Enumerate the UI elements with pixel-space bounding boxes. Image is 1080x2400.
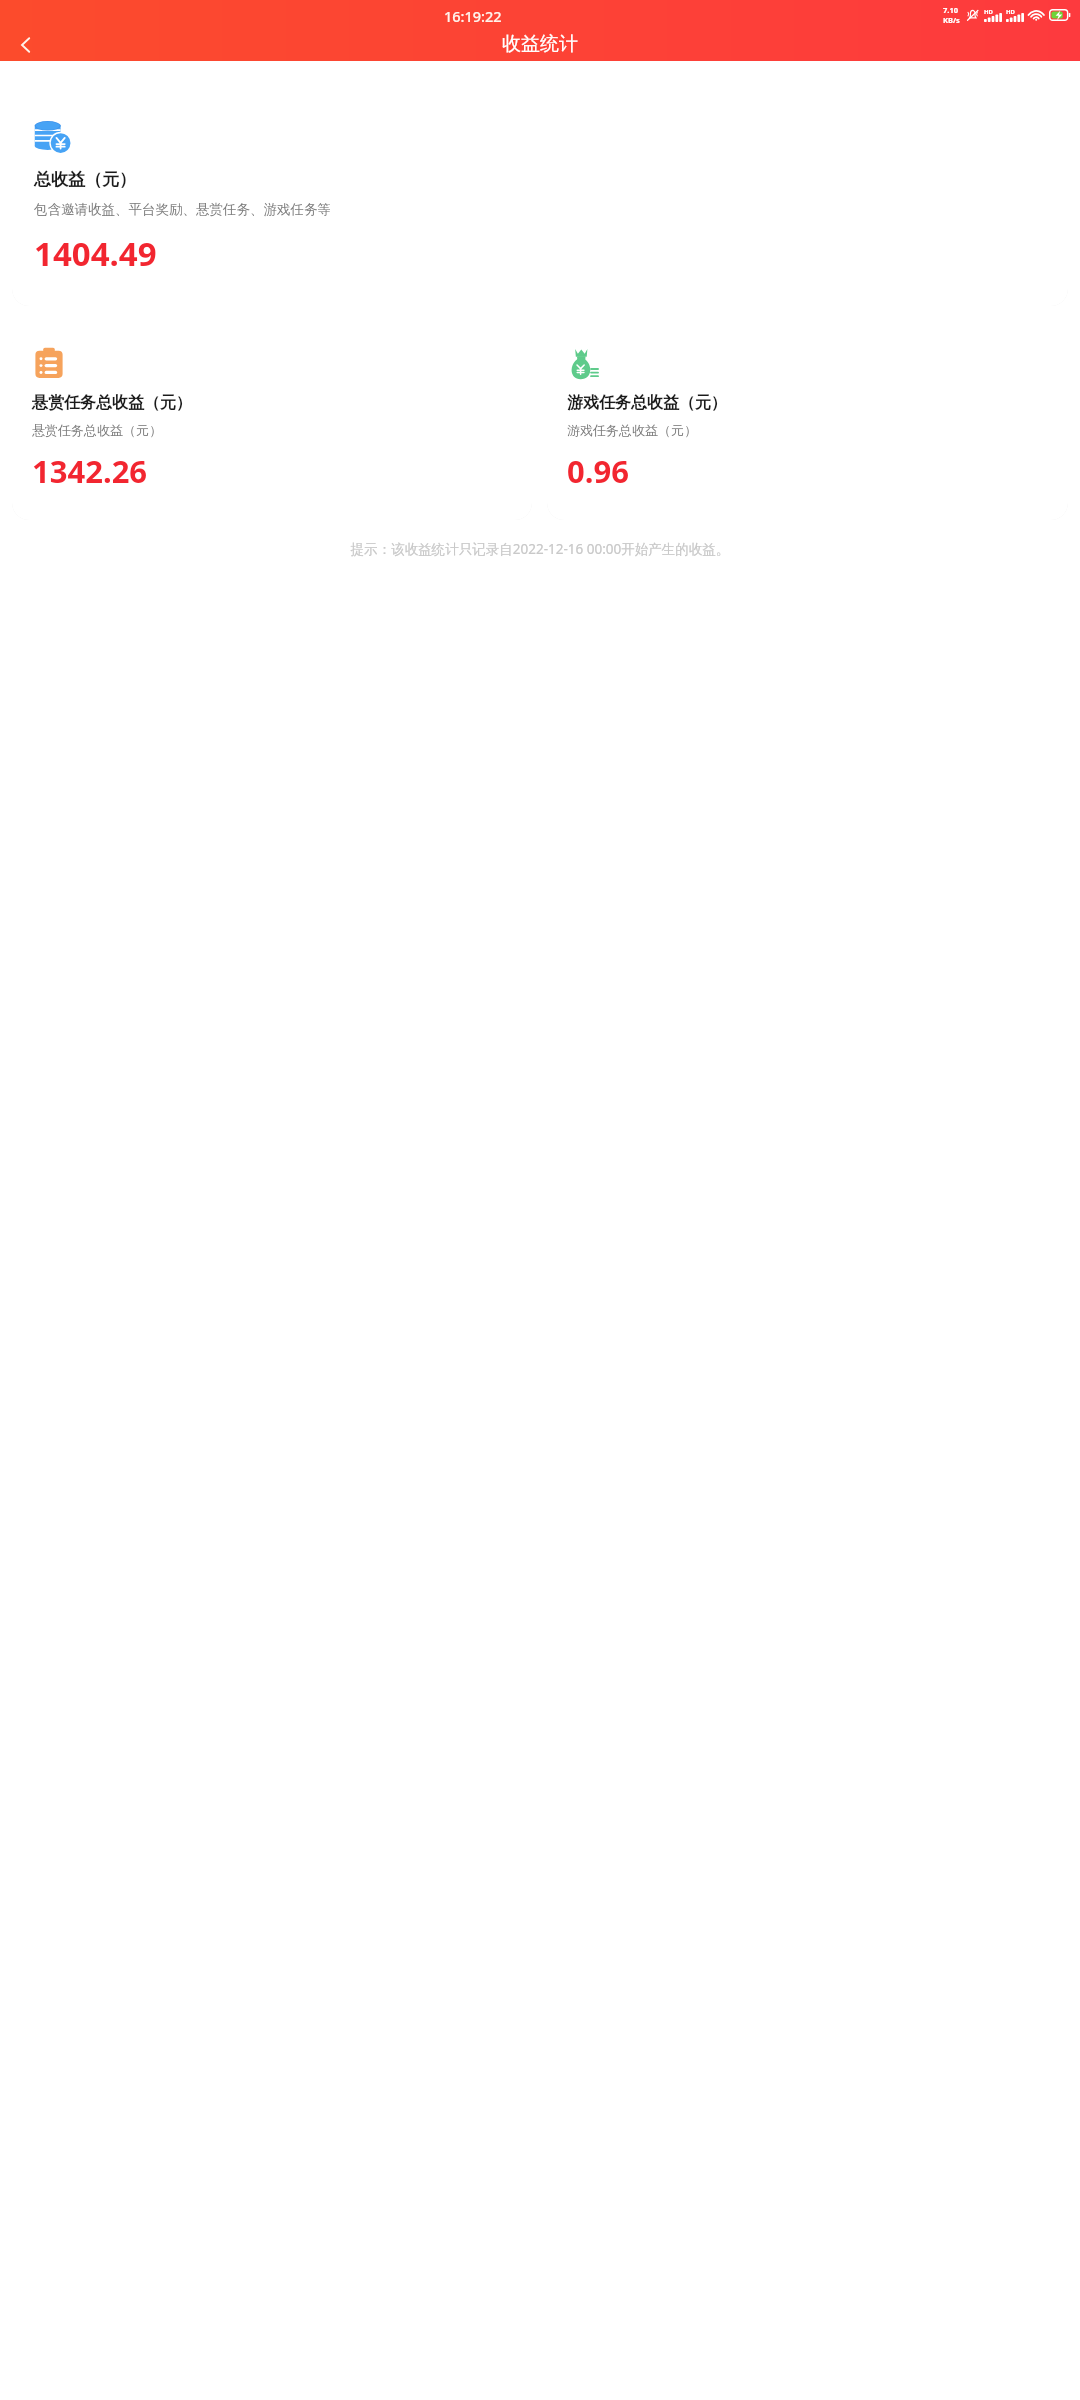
staticText: 悬赏任务总收益（元） <box>32 422 162 438</box>
staticText: HD <box>1006 8 1015 16</box>
staticText: 提示：该收益统计只记录自2022-12-16 00:00开始产生的收益。 <box>0 540 1080 558</box>
staticText: 1404.49 <box>34 231 157 276</box>
staticText: 0.96 <box>567 450 629 492</box>
staticText: 收益统计 <box>502 32 578 56</box>
staticText: 总收益（元） <box>34 169 136 190</box>
staticText: 游戏任务总收益（元） <box>567 393 727 413</box>
staticText: KB/s <box>943 15 960 25</box>
button[interactable]: 悬赏任务总收益（元） <box>12 327 532 520</box>
staticText: 16:19:22 <box>444 6 502 26</box>
staticText: HD <box>984 8 993 16</box>
button[interactable]: 游戏任务总收益（元） <box>547 327 1068 520</box>
staticText: 7.10 <box>943 5 958 15</box>
button[interactable]: Back <box>4 29 48 61</box>
button[interactable]: 总收益（元） <box>12 96 1068 306</box>
staticText: 1342.26 <box>32 450 148 492</box>
staticText: 游戏任务总收益（元） <box>567 422 697 438</box>
staticText: 悬赏任务总收益（元） <box>32 393 192 413</box>
staticText: 包含邀请收益、平台奖励、悬赏任务、游戏任务等 <box>34 201 331 218</box>
